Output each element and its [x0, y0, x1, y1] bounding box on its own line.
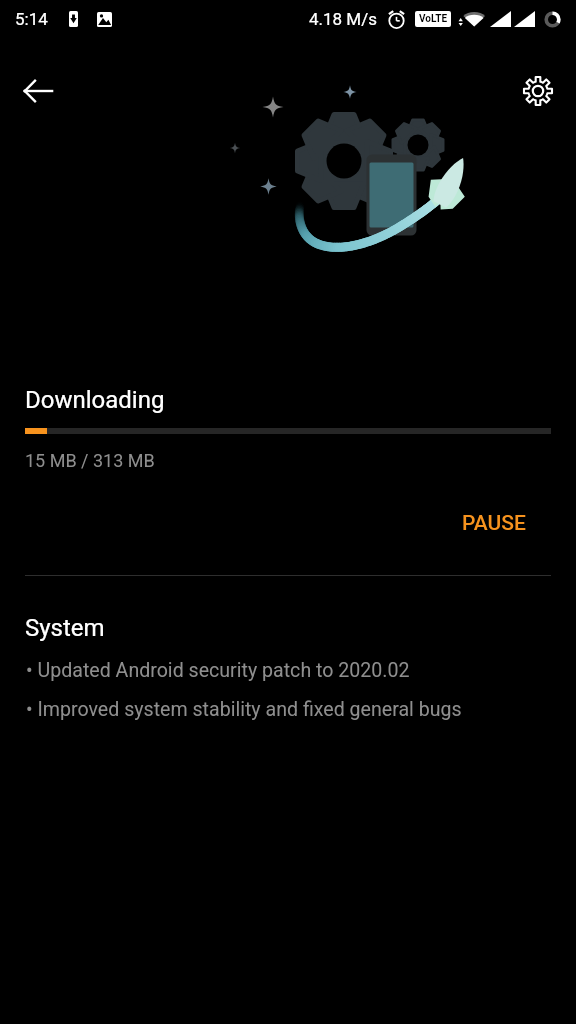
staticText: 5:14 — [15, 9, 48, 29]
staticText: • Improved system stability and fixed ge… — [26, 698, 462, 721]
staticText: 4.18 M/s — [309, 9, 377, 29]
staticText: Downloading — [25, 386, 165, 414]
staticText: • Updated Android security patch to 2020… — [26, 659, 410, 682]
staticText: PAUSE — [462, 511, 526, 536]
staticText: 15 MB / 313 MB — [25, 450, 155, 471]
button[interactable]: PAUSE — [444, 500, 543, 546]
staticText: System — [25, 614, 105, 642]
button[interactable]: Back — [14, 67, 62, 115]
staticText: VoLTE — [419, 13, 448, 25]
button[interactable]: Settings — [514, 67, 562, 115]
